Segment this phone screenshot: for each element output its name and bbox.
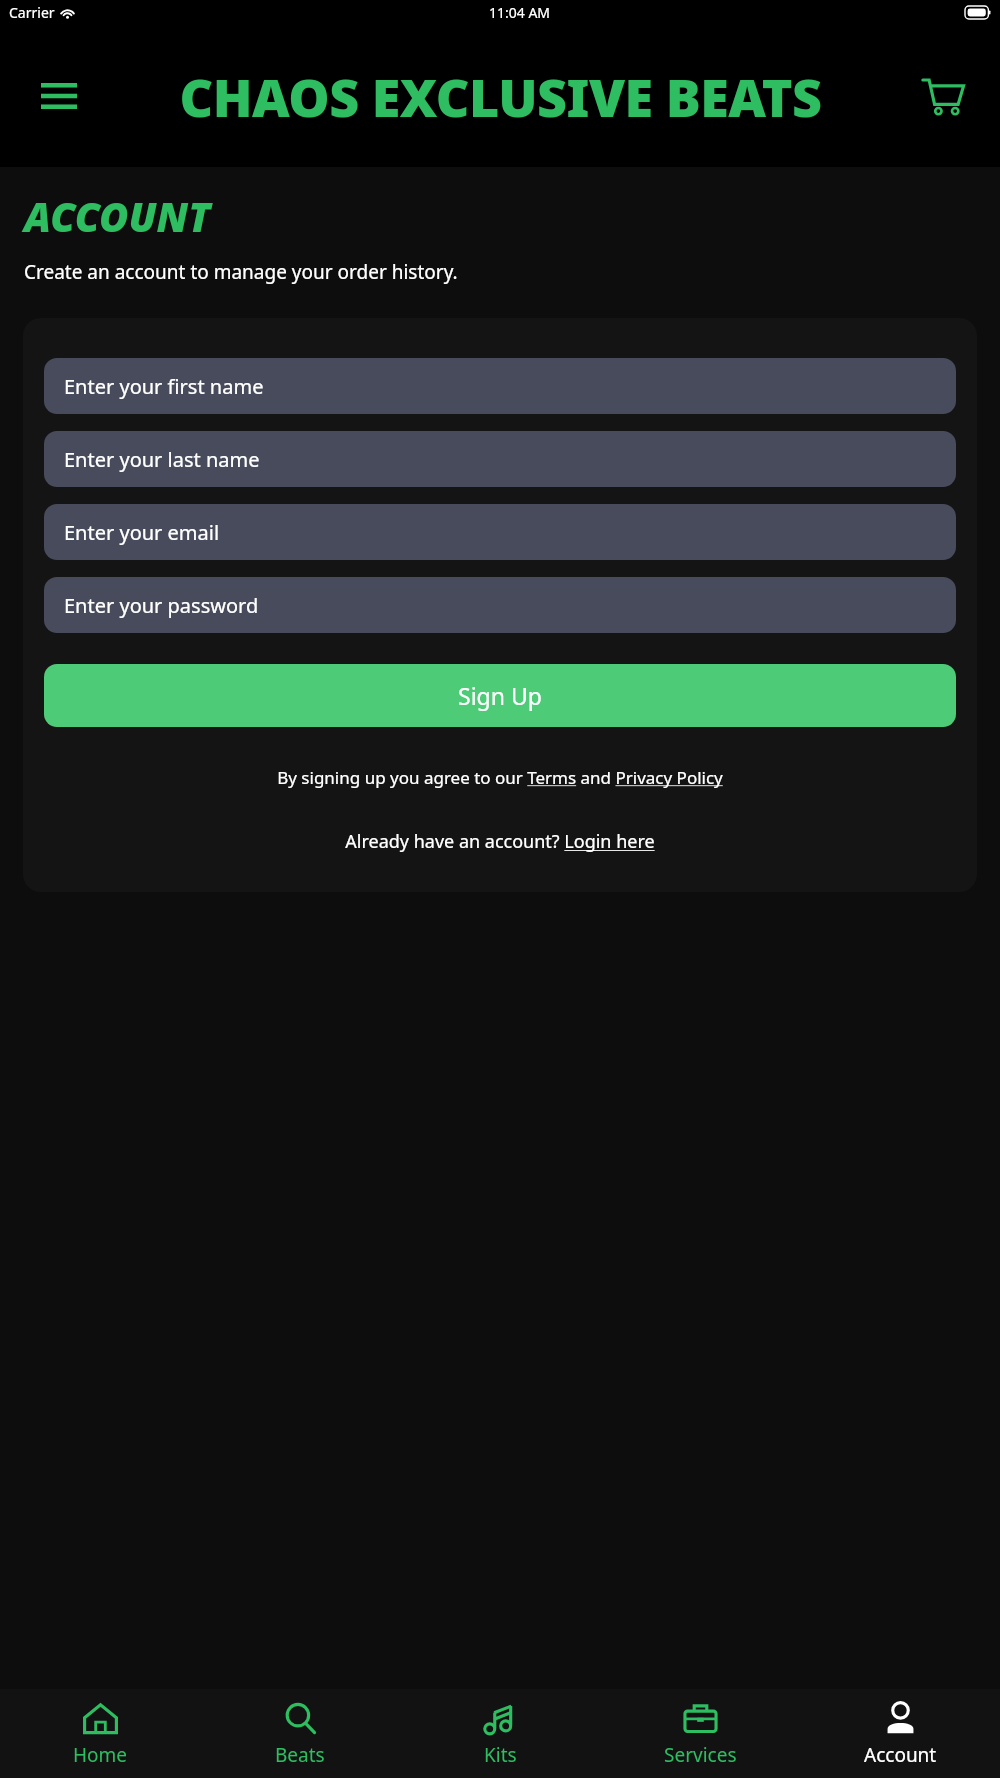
staticText: Beats [275,1742,325,1768]
button[interactable]: Enter your password [44,577,956,633]
button[interactable]: Account [800,1689,1000,1778]
staticText: Home [73,1742,128,1768]
button[interactable]: Beats [200,1689,400,1778]
button[interactable]: Services [600,1689,800,1778]
button[interactable]: Menu [36,73,82,119]
staticText: Carrier [9,3,55,22]
button[interactable]: By signing up you agree to our Terms and… [44,766,956,789]
staticText: By signing up you agree to our Terms and… [277,766,723,789]
staticText: Enter your email [64,519,220,546]
button[interactable]: Sign Up [44,664,956,727]
button[interactable]: Cart [916,69,970,123]
staticText: Services [664,1742,737,1768]
staticText: Enter your first name [64,373,264,400]
staticText: Create an account to manage your order h… [24,259,458,285]
button[interactable]: Enter your first name [44,358,956,414]
button[interactable]: Already have an account? Login here [44,829,956,854]
staticText: Sign Up [458,680,542,711]
button[interactable]: Kits [400,1689,600,1778]
staticText: ACCOUNT [24,189,211,243]
staticText: Enter your password [64,592,259,619]
staticText: CHAOS EXCLUSIVE BEATS [179,61,822,132]
button[interactable]: Home [0,1689,200,1778]
staticText: 11:04 AM [489,3,551,22]
button[interactable]: Enter your email [44,504,956,560]
staticText: Account [864,1742,937,1768]
button[interactable]: Enter your last name [44,431,956,487]
staticText: Enter your last name [64,446,260,473]
staticText: Already have an account? Login here [345,829,655,854]
staticText: Kits [484,1742,517,1768]
